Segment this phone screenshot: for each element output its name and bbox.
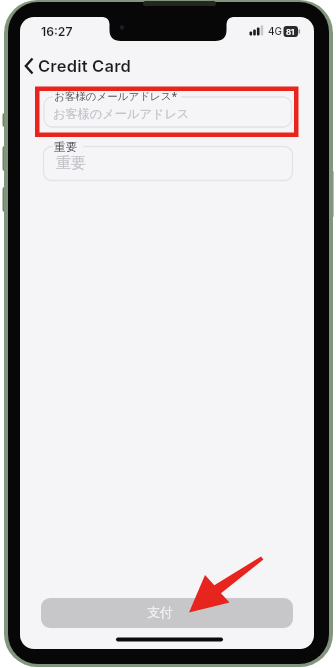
staticText: お客様のメールアドレス* xyxy=(54,89,178,103)
button[interactable] xyxy=(44,147,293,181)
staticText: 重要 xyxy=(54,140,78,155)
staticText: お客様のメールアドレス xyxy=(53,106,190,121)
staticText: 16:27 xyxy=(41,24,73,39)
staticText: Credit Card xyxy=(38,56,132,76)
button[interactable]: 支付 xyxy=(41,598,293,628)
staticText: 4G xyxy=(268,25,283,37)
staticText: 81 xyxy=(286,27,295,37)
staticText: 重要 xyxy=(56,154,86,173)
button[interactable] xyxy=(44,97,291,127)
staticText: 支付 xyxy=(147,604,173,620)
button[interactable]: Credit Card xyxy=(22,54,152,80)
